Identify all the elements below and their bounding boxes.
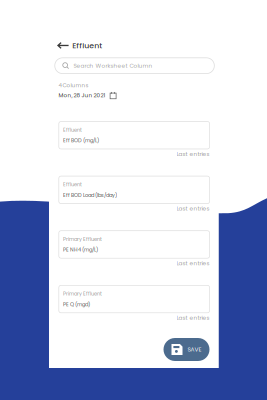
staticText: Eff BOD Load (lbs/day) <box>63 191 117 199</box>
staticText: Last entries <box>177 205 210 212</box>
staticText: Primary Effluent <box>63 236 102 243</box>
staticText: Effluent <box>63 181 82 188</box>
staticText: PE NH4 (mg/L) <box>63 246 98 253</box>
staticText: Last entries <box>177 259 210 267</box>
staticText: Last entries <box>177 150 210 158</box>
staticText: Last entries <box>177 314 210 322</box>
staticText: Mon, 28 Jun 2021 <box>59 91 106 99</box>
staticText: Primary Effluent <box>63 290 102 297</box>
staticText: Search Worksheet Column <box>73 62 152 70</box>
button[interactable]: Effluent <box>53 36 106 55</box>
button[interactable]: Search Worksheet Column <box>55 58 214 74</box>
staticText: SAVE <box>187 345 201 354</box>
staticText: PE Q (mgd) <box>63 301 90 308</box>
staticText: 4 Columns <box>59 81 89 89</box>
button[interactable]: SAVE <box>163 338 209 361</box>
staticText: Eff BOD (mg/L) <box>63 137 99 144</box>
staticText: Effluent <box>63 126 82 133</box>
staticText: Effluent <box>72 40 102 51</box>
